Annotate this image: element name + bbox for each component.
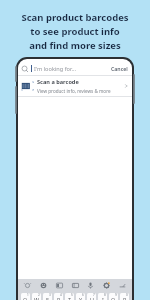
staticText: 1 <box>27 293 29 297</box>
staticText: 6 <box>82 293 84 297</box>
button[interactable]: Settings <box>101 280 112 291</box>
button[interactable]: O <box>109 293 118 300</box>
staticText: E <box>46 296 49 300</box>
staticText: R <box>57 296 61 300</box>
staticText: and find more sizes <box>29 39 121 52</box>
staticText: Scan product barcodes <box>21 11 129 24</box>
button[interactable]: Search <box>18 62 132 75</box>
staticText: I'm looking for... <box>34 65 110 73</box>
staticText: 3 <box>49 293 51 297</box>
button[interactable]: Clipboard <box>70 280 81 291</box>
staticText: P <box>123 296 127 300</box>
button[interactable]: Q <box>21 293 30 300</box>
staticText: 7 <box>93 293 95 297</box>
staticText: T <box>68 296 71 300</box>
button[interactable]: P <box>120 293 129 300</box>
staticText: Q <box>23 296 28 300</box>
staticText: Scan a barcode <box>37 78 79 86</box>
staticText: Y <box>79 296 83 300</box>
staticText: U <box>90 296 94 300</box>
button[interactable]: GIF <box>54 280 65 291</box>
staticText: W <box>34 296 40 300</box>
button[interactable]: Y <box>76 293 85 300</box>
button[interactable]: R <box>54 293 63 300</box>
staticText: O <box>111 296 116 300</box>
staticText: I <box>102 296 104 300</box>
button[interactable]: Emoji <box>38 280 49 291</box>
button[interactable]: Cancel <box>110 65 129 72</box>
other: Search <box>21 65 29 73</box>
button[interactable]: I <box>98 293 107 300</box>
other: Scan a barcode <box>21 81 34 91</box>
staticText: 8 <box>104 293 106 297</box>
staticText: 0 <box>126 293 128 297</box>
staticText: Cancel <box>111 65 128 72</box>
button[interactable]: Microphone <box>85 280 96 291</box>
staticText: to see product info <box>30 25 120 38</box>
button[interactable]: W <box>32 293 41 300</box>
button[interactable]: U <box>87 293 96 300</box>
staticText: 5 <box>71 293 73 297</box>
staticText: View product info, reviews & more <box>37 88 111 94</box>
button[interactable]: E <box>43 293 52 300</box>
button[interactable]: More options <box>117 280 128 291</box>
button[interactable]: Scan a barcode <box>18 76 132 96</box>
staticText: 4 <box>60 293 62 297</box>
staticText: 2 <box>38 293 40 297</box>
staticText: 9 <box>115 293 117 297</box>
button[interactable]: T <box>65 293 74 300</box>
button[interactable]: Voice typing toggle <box>22 280 33 291</box>
